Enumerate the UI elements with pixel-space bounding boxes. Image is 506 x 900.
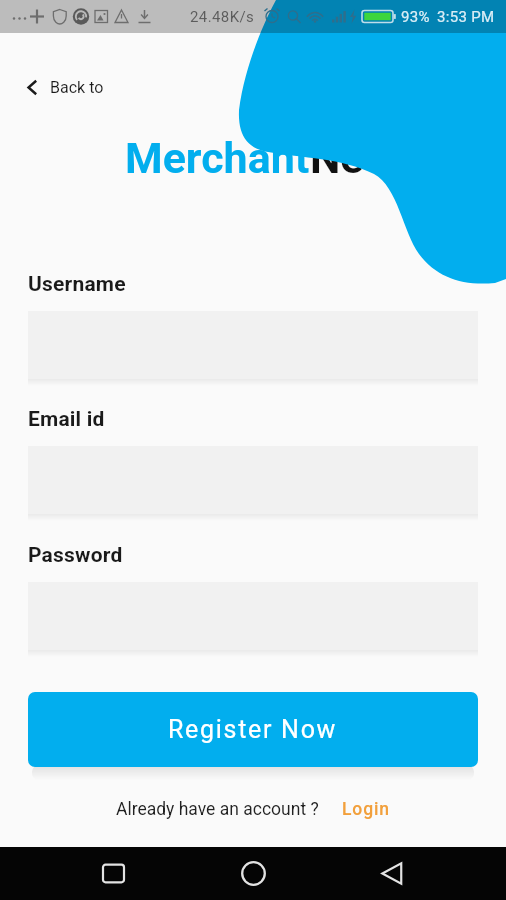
staticText: 93% [401,8,430,26]
staticText: Merchant [125,133,310,183]
button[interactable]: Back to [21,72,110,103]
staticText: Register Now [168,715,338,744]
button[interactable]: Login [342,799,391,820]
button[interactable]: Register Now [28,692,478,767]
staticText: Ne [310,133,364,183]
staticText: Username [28,272,126,297]
staticText: Password [28,543,123,568]
staticText: Email id [28,407,105,432]
staticText: 3:53 PM [437,8,495,26]
button[interactable]: Back [362,847,423,900]
staticText: 24.48K/s [190,8,255,26]
button[interactable]: Recents [83,847,144,900]
staticText: Back to [50,78,104,97]
staticText: Already have an account ? [116,799,319,820]
button[interactable]: Home [222,847,284,900]
staticText: Login [342,799,391,820]
